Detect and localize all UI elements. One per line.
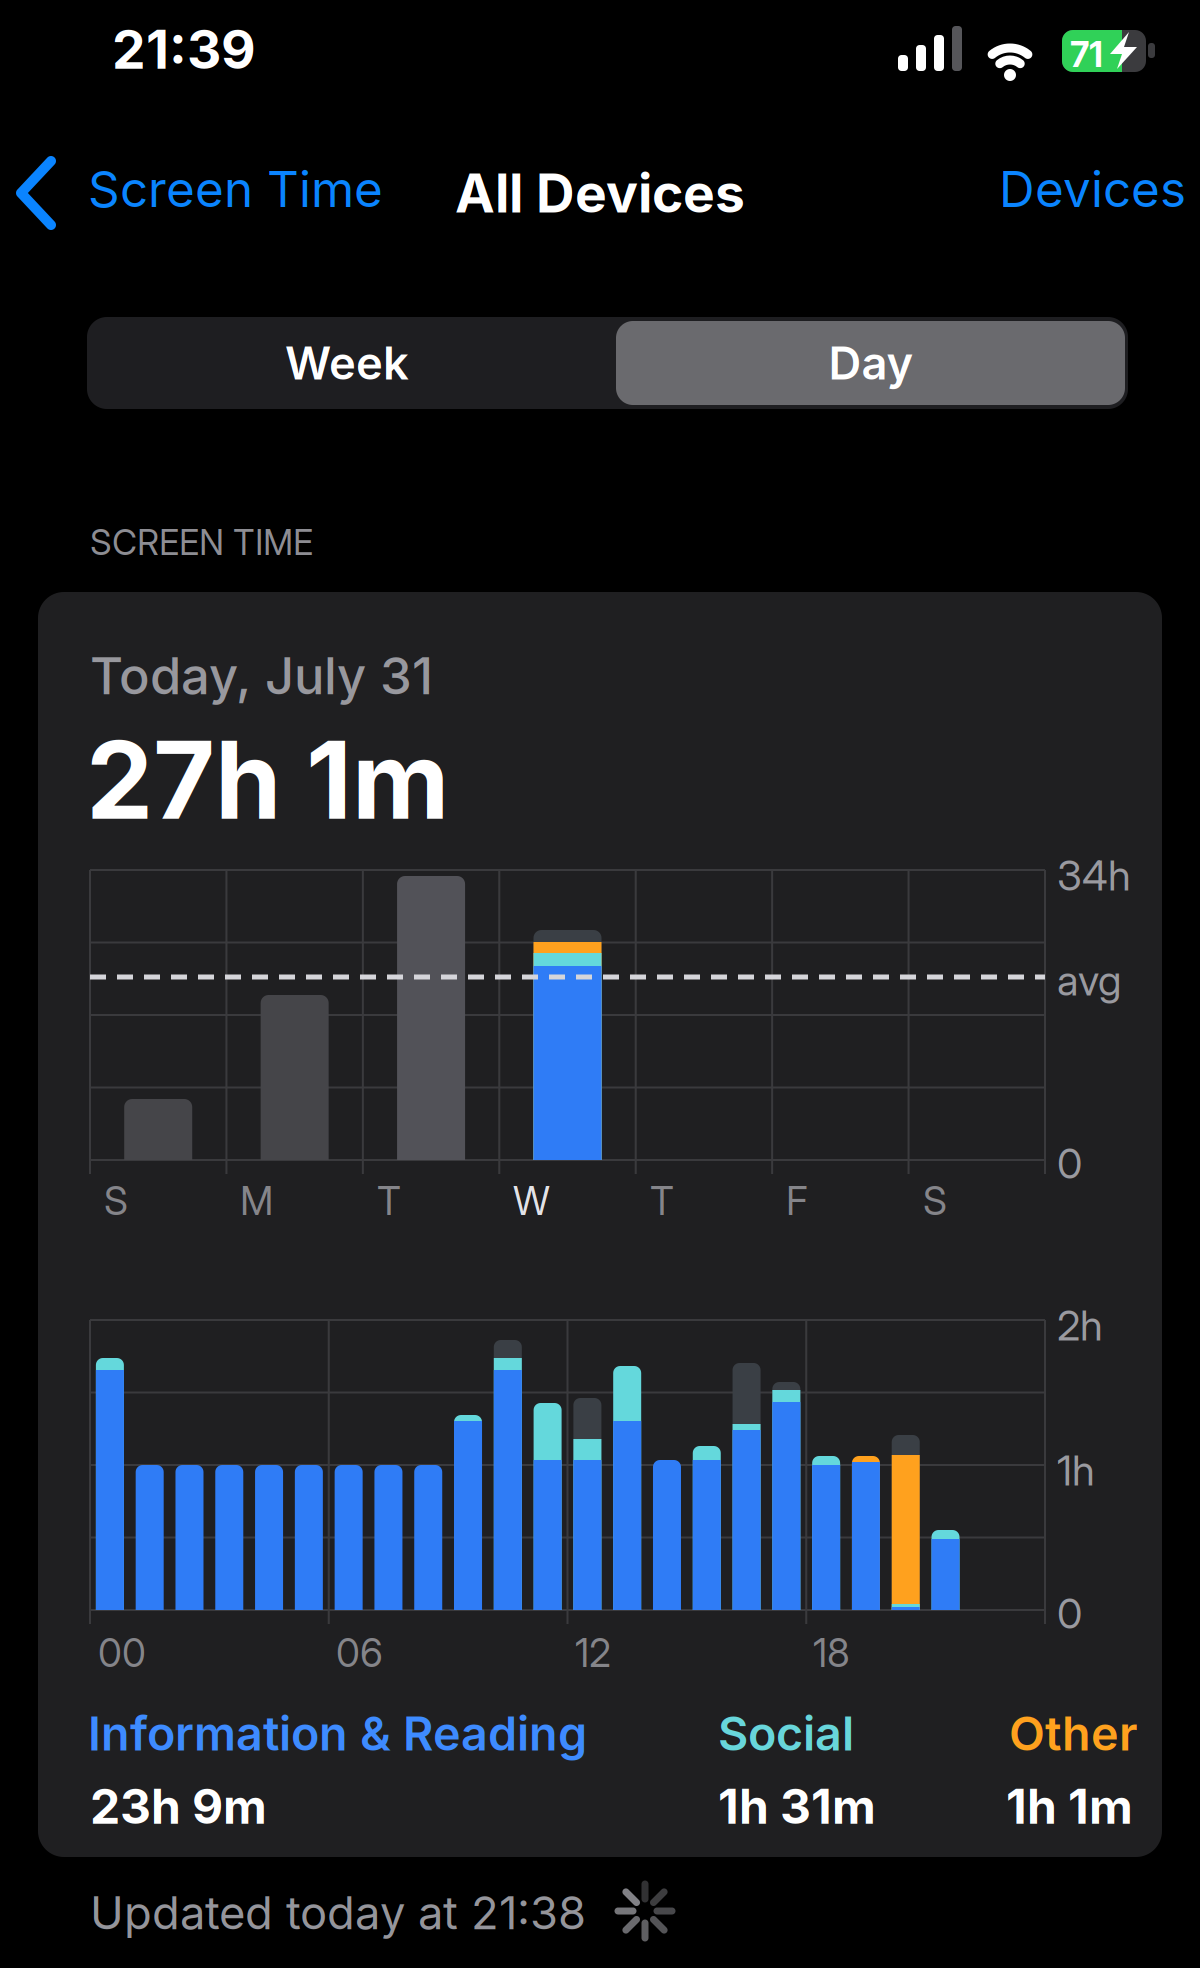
- staticText: Day: [828, 336, 913, 390]
- staticText: All Devices: [455, 161, 745, 224]
- staticText: S: [923, 1178, 947, 1224]
- staticText: 0: [1057, 1139, 1082, 1188]
- staticText: Updated today at 21:38: [90, 1886, 586, 1939]
- staticText: 21:39: [112, 18, 256, 81]
- staticText: 0: [1057, 1589, 1082, 1638]
- staticText: F: [786, 1178, 808, 1224]
- staticText: 00: [98, 1630, 146, 1676]
- staticText: avg: [1057, 956, 1121, 1005]
- staticText: S: [104, 1178, 128, 1224]
- staticText: 1h: [1057, 1446, 1095, 1495]
- staticText: 06: [336, 1630, 383, 1676]
- staticText: 1h 31m: [718, 1778, 876, 1835]
- staticText: Screen Time: [88, 160, 383, 218]
- staticText: T: [650, 1178, 674, 1224]
- staticText: Social: [718, 1706, 854, 1761]
- staticText: Other: [1009, 1706, 1138, 1761]
- staticText: T: [377, 1178, 401, 1224]
- staticText: 71: [1070, 34, 1103, 75]
- staticText: Week: [285, 336, 409, 390]
- staticText: 34h: [1057, 851, 1131, 900]
- staticText: 23h 9m: [90, 1778, 267, 1835]
- staticText: 18: [813, 1630, 850, 1676]
- staticText: 2h: [1057, 1301, 1103, 1350]
- staticText: 12: [575, 1630, 611, 1676]
- staticText: Devices: [999, 160, 1186, 218]
- staticText: 27h 1m: [86, 717, 449, 843]
- staticText: W: [513, 1178, 550, 1224]
- staticText: SCREEN TIME: [90, 522, 313, 563]
- staticText: 1h 1m: [1006, 1778, 1133, 1835]
- staticText: Information & Reading: [88, 1706, 587, 1761]
- staticText: Today, July 31: [90, 646, 433, 706]
- staticText: M: [240, 1178, 273, 1224]
